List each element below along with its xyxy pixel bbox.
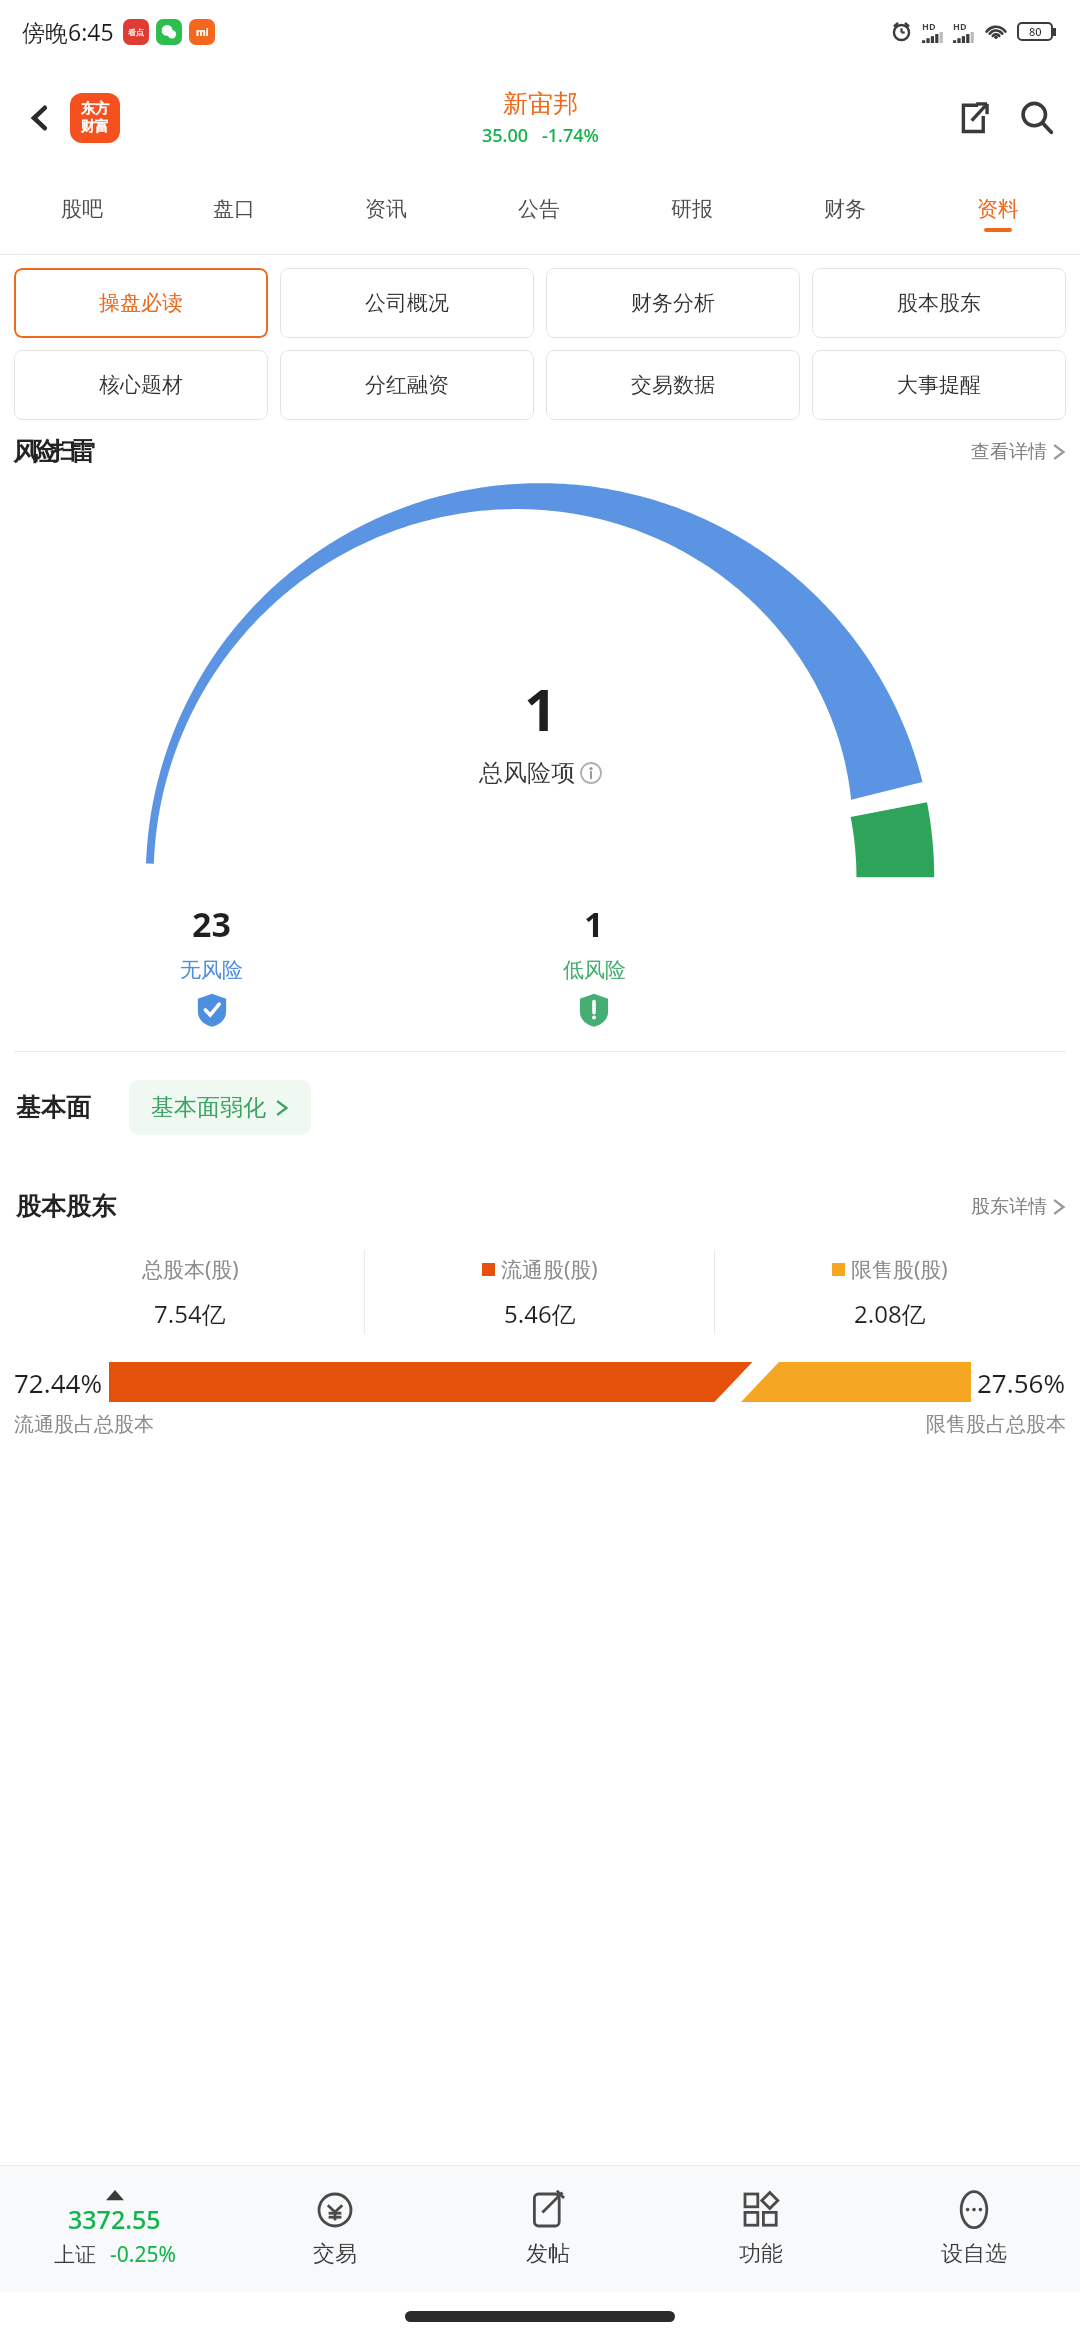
- button[interactable]: 1: [403, 901, 785, 1027]
- staticText: 总风险项: [479, 758, 575, 788]
- staticText: 风险扫雷: [16, 436, 92, 467]
- staticText: 交易: [313, 2240, 357, 2268]
- staticText: 股吧: [61, 196, 103, 222]
- staticText: 7.54亿: [154, 1297, 226, 1330]
- staticText: 分红融资: [365, 372, 449, 398]
- staticText: 2.08亿: [854, 1297, 926, 1330]
- staticText: 功能: [739, 2240, 783, 2268]
- button[interactable]: 资讯: [310, 174, 462, 254]
- staticText: 1: [584, 901, 604, 947]
- button[interactable]: 公司概况: [280, 268, 534, 338]
- staticText: 盘口: [213, 196, 255, 222]
- button[interactable]: 核心题材: [14, 350, 268, 420]
- button[interactable]: 发帖: [441, 2166, 654, 2292]
- button[interactable]: Back: [14, 92, 66, 144]
- staticText: 流通股(股): [501, 1255, 598, 1284]
- staticText: 股本股东: [897, 290, 981, 316]
- staticText: 交易数据: [631, 372, 715, 398]
- button[interactable]: 交易: [229, 2166, 441, 2292]
- staticText: 股本股东: [16, 1191, 116, 1222]
- staticText: 限售股占总股本: [926, 1412, 1066, 1437]
- staticText: 基本面: [16, 1092, 91, 1123]
- button[interactable]: 交易数据: [546, 350, 800, 420]
- staticText: 1: [524, 669, 558, 748]
- button[interactable]: 3372.55: [0, 2166, 229, 2292]
- staticText: 设自选: [941, 2240, 1007, 2268]
- button[interactable]: 股吧: [6, 174, 158, 254]
- staticText: mi: [196, 25, 209, 39]
- staticText: 新宙邦: [503, 88, 578, 119]
- button[interactable]: 操盘必读: [14, 268, 268, 338]
- staticText: 5.46亿: [504, 1297, 576, 1330]
- staticText: 27.56%: [977, 1365, 1066, 1400]
- staticText: HD: [922, 20, 936, 32]
- staticText: 股东详情: [971, 1195, 1047, 1219]
- staticText: 无风险: [180, 957, 243, 983]
- staticText: 查看详情: [971, 440, 1047, 464]
- staticText: 公司概况: [365, 290, 449, 316]
- button[interactable]: 资料: [921, 174, 1074, 254]
- button[interactable]: 股本股东: [812, 268, 1066, 338]
- staticText: 看点: [128, 27, 144, 37]
- staticText: 资料: [977, 196, 1019, 222]
- staticText: 研报: [671, 196, 713, 222]
- staticText: 公告: [518, 196, 560, 222]
- staticText: 低风险: [563, 957, 626, 983]
- staticText: 大事提醒: [897, 372, 981, 398]
- staticText: -1.74%: [542, 123, 599, 148]
- button[interactable]: 23: [20, 901, 403, 1027]
- button[interactable]: 公告: [462, 174, 615, 254]
- button[interactable]: 财务分析: [546, 268, 800, 338]
- staticText: 23: [192, 901, 231, 947]
- staticText: 上证: [54, 2242, 96, 2268]
- staticText: 35.00: [482, 123, 529, 148]
- button[interactable]: 查看详情: [971, 440, 1066, 464]
- staticText: 发帖: [526, 2240, 570, 2268]
- button[interactable]: 基本面弱化: [129, 1080, 311, 1135]
- button[interactable]: 财务: [768, 174, 921, 254]
- button[interactable]: 分红融资: [280, 350, 534, 420]
- staticText: 资讯: [365, 196, 407, 222]
- staticText: 核心题材: [99, 372, 183, 398]
- staticText: 总股本(股): [142, 1255, 239, 1284]
- button[interactable]: 东方财富: [70, 93, 120, 143]
- staticText: 东方: [81, 100, 109, 118]
- button[interactable]: 盘口: [158, 174, 310, 254]
- button[interactable]: 大事提醒: [812, 350, 1066, 420]
- button[interactable]: 说明: [580, 762, 602, 784]
- staticText: HD: [953, 20, 967, 32]
- staticText: 财务: [824, 196, 866, 222]
- staticText: 财富: [81, 118, 109, 136]
- staticText: 流通股占总股本: [14, 1412, 154, 1437]
- button[interactable]: Share: [944, 89, 1002, 147]
- staticText: 操盘必读: [99, 290, 183, 316]
- button[interactable]: 股东详情: [971, 1195, 1066, 1219]
- staticText: -0.25%: [110, 2240, 176, 2269]
- staticText: 傍晚6:45: [22, 16, 114, 47]
- button[interactable]: Search: [1008, 89, 1066, 147]
- button[interactable]: 功能: [654, 2166, 867, 2292]
- staticText: 72.44%: [14, 1365, 103, 1400]
- staticText: 财务分析: [631, 290, 715, 316]
- staticText: 基本面弱化: [151, 1093, 266, 1122]
- staticText: 限售股(股): [851, 1255, 948, 1284]
- button[interactable]: 研报: [615, 174, 768, 254]
- button[interactable]: 设自选: [867, 2166, 1080, 2292]
- staticText: 80: [1029, 24, 1042, 39]
- staticText: 3372.55: [68, 2202, 161, 2236]
